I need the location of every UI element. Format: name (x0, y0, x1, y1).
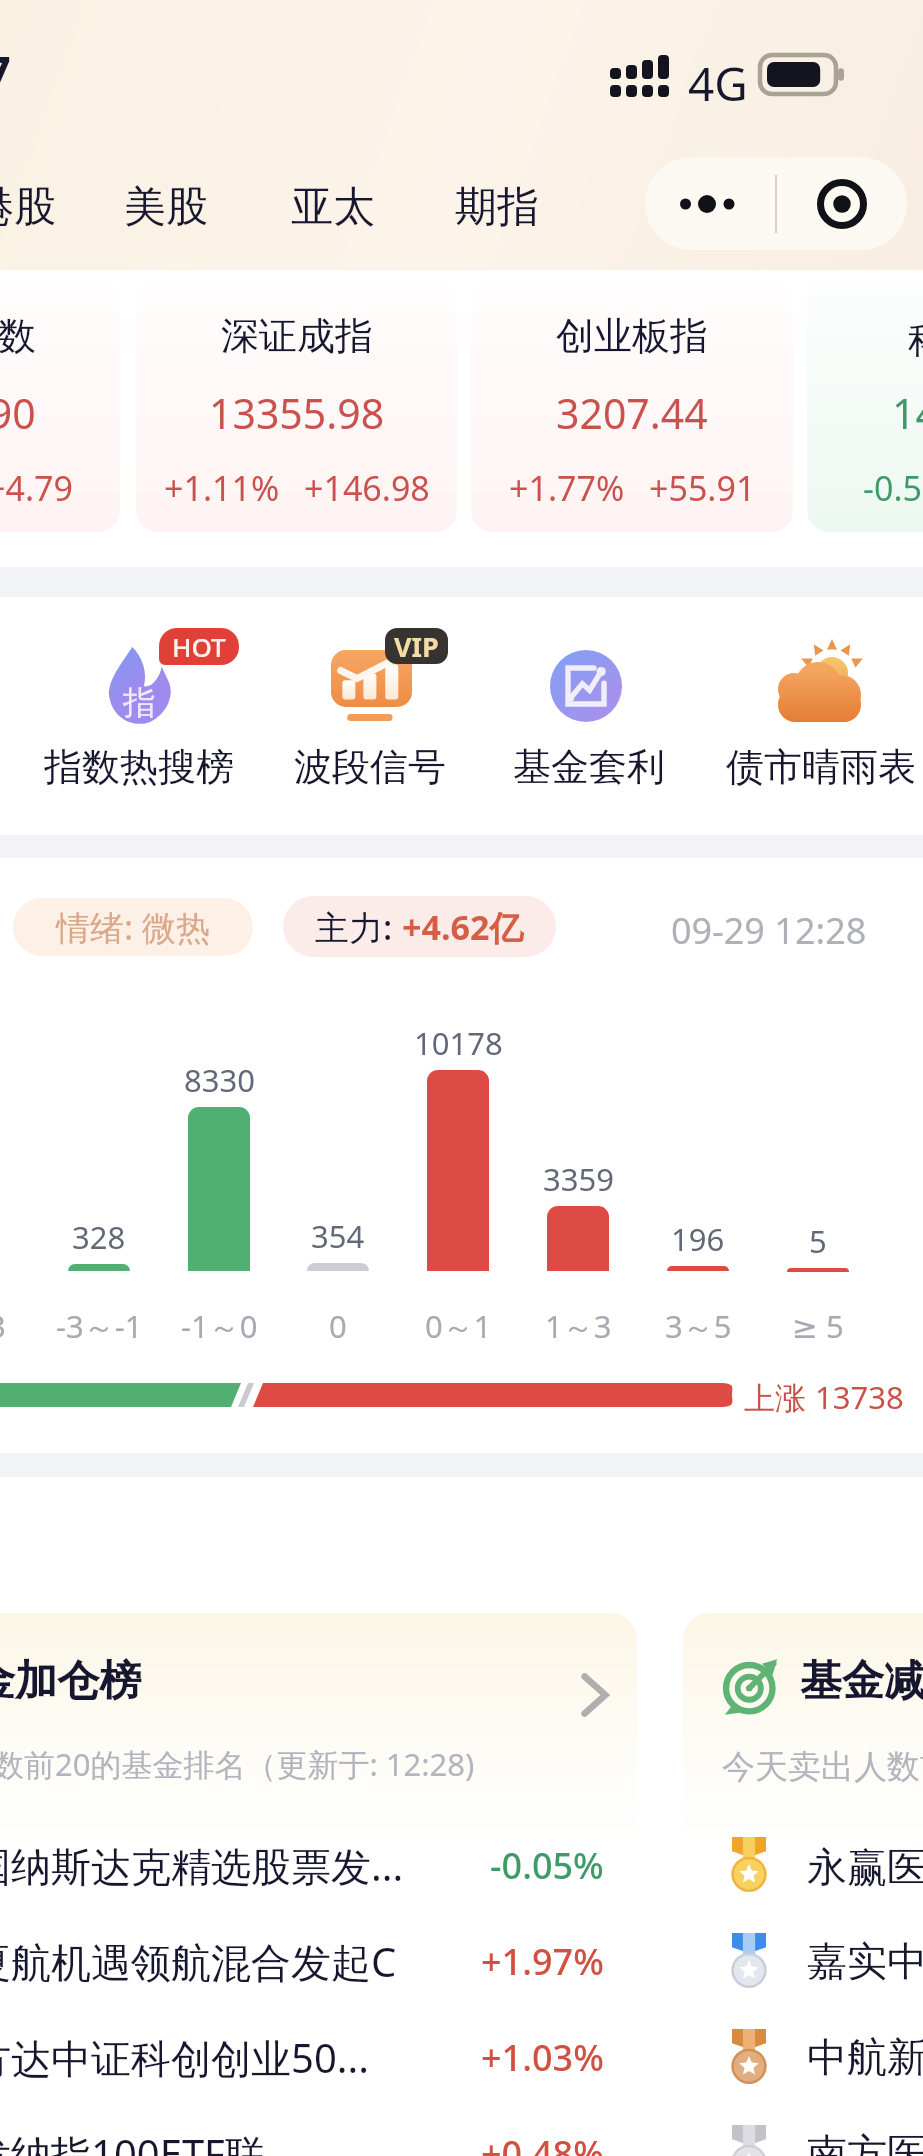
button[interactable]: 永赢医药健康A (683, 1828, 923, 1902)
staticText: -3～-1 (56, 1305, 143, 1347)
button[interactable]: 基金套利 (476, 607, 702, 797)
staticText: 8330 (184, 1059, 255, 1101)
staticText: 4G (688, 52, 748, 115)
button[interactable]: 中航新起航混合 (683, 2020, 923, 2094)
staticText: 创业板指 (556, 312, 708, 360)
staticText: 华夏航机遇领航混合发起C (0, 1934, 397, 1989)
button[interactable]: 南方医药保健灵 (683, 2116, 923, 2156)
staticText: VIP (394, 628, 439, 664)
staticText: 债市晴雨表 (726, 743, 916, 791)
staticText: 期指 (455, 181, 539, 234)
button[interactable]: 主力: (283, 896, 556, 957)
staticText: +146.98 (304, 465, 430, 511)
button[interactable]: 情绪: 微热 (13, 898, 253, 956)
button[interactable]: 华夏航机遇领航混合发起C (0, 1924, 637, 1998)
button[interactable]: 基金加仓榜 (0, 1613, 637, 2156)
staticText: 5 (809, 1220, 827, 1262)
staticText: 3207.44 (556, 385, 708, 441)
staticText: -0.53% (863, 465, 923, 511)
button[interactable]: More options (645, 157, 775, 250)
button[interactable]: 期指 (455, 174, 539, 240)
staticText: +1.11% (164, 465, 280, 511)
button[interactable]: 基金减仓榜 (683, 1613, 923, 2156)
staticText: 科创50 (908, 312, 923, 364)
staticText: 354 (311, 1215, 365, 1257)
button[interactable]: 嘉实中证主要消 (683, 1924, 923, 1998)
staticText: 中航新起航混合 (807, 2032, 923, 2082)
staticText: +4.79 (0, 465, 73, 511)
staticText: 196 (671, 1218, 725, 1260)
staticText: ≥ 5 (792, 1305, 844, 1347)
staticText: 永赢医药健康A (807, 1838, 923, 1893)
staticText: 富国纳斯达克精选股票发... (0, 1838, 404, 1893)
button[interactable]: 港股 (0, 174, 56, 240)
button[interactable]: Close mini program (777, 157, 907, 250)
staticText: 13738 (815, 1376, 904, 1418)
staticText: 0～1 (425, 1305, 492, 1347)
button[interactable]: 易方达中证科创创业50... (0, 2020, 637, 2094)
staticText: 基金减仓榜 (800, 1655, 923, 1708)
button[interactable]: 广发纳指100ETF联 (0, 2116, 637, 2156)
button[interactable]: View full ranking (571, 1671, 619, 1719)
staticText: +4.62亿 (402, 904, 524, 950)
staticText: 基金加仓榜 (0, 1655, 141, 1708)
staticText: 3～5 (665, 1305, 732, 1347)
staticText: 09-29 12:28 (671, 906, 867, 955)
button[interactable]: VIP (257, 607, 483, 797)
staticText: 9:17 (0, 41, 11, 104)
staticText: ≤-3 (0, 1305, 6, 1347)
button[interactable]: 深证成指 (136, 280, 457, 532)
button[interactable]: 创业板指 (471, 280, 793, 532)
staticText: 广发纳指100ETF联 (0, 2126, 265, 2156)
staticText: 美股 (124, 181, 208, 234)
button[interactable]: 亚太 (291, 174, 375, 240)
staticText: 港股 (0, 181, 56, 234)
button[interactable]: 上证指数 (0, 280, 120, 532)
staticText: 南方医药保健灵 (807, 2128, 923, 2156)
staticText: HOT (172, 629, 226, 664)
staticText: 深证成指 (221, 312, 373, 360)
staticText: +1.97% (481, 1937, 604, 1986)
staticText: 13355.98 (209, 385, 385, 441)
button[interactable]: 美股 (124, 174, 208, 240)
staticText: 328 (72, 1216, 126, 1258)
staticText: 入人数前20的基金排名（更新于: 12:28) (0, 1743, 475, 1785)
staticText: 上涨 (744, 1376, 815, 1418)
staticText: 1～3 (545, 1305, 612, 1347)
staticText: +1.77% (509, 465, 625, 511)
staticText: 指 (123, 682, 156, 724)
staticText: 基金套利 (513, 743, 665, 791)
staticText: 易方达中证科创创业50... (0, 2030, 369, 2085)
staticText: 波段信号 (294, 743, 446, 791)
staticText: 3359 (543, 1158, 614, 1200)
staticText: 0 (329, 1305, 347, 1347)
staticText: 情绪: 微热 (56, 904, 210, 950)
staticText: +55.91 (649, 465, 756, 511)
staticText: 10178 (414, 1022, 503, 1064)
button[interactable]: 指 (26, 607, 252, 797)
staticText: 上证指数 (0, 312, 36, 360)
staticText: 指数热搜榜 (44, 743, 234, 791)
staticText: -0.05% (490, 1841, 604, 1890)
button[interactable]: 科创50 (807, 280, 923, 532)
staticText: +0.48% (481, 2129, 604, 2156)
staticText: 1400.45 (892, 385, 923, 441)
button[interactable]: 债市晴雨表 (708, 607, 923, 797)
staticText: 亚太 (291, 181, 375, 234)
staticText: 3889.90 (0, 385, 36, 441)
staticText: 今天卖出人数前20的基金排名（更新于: 12:28) (722, 1743, 923, 1788)
staticText: -1～0 (181, 1305, 258, 1347)
staticText: 主力: (315, 904, 402, 950)
staticText: 嘉实中证主要消 (807, 1936, 923, 1986)
staticText: +1.03% (481, 2033, 604, 2082)
button[interactable]: 富国纳斯达克精选股票发... (0, 1828, 637, 1902)
